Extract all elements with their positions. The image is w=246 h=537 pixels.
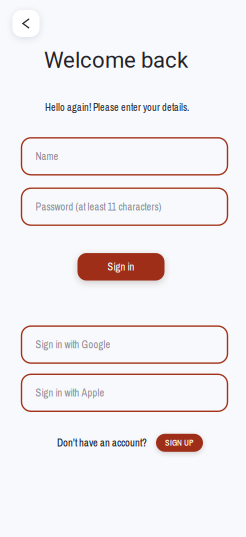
button[interactable]: Name xyxy=(21,138,227,175)
staticText: SIGN UP xyxy=(165,437,194,448)
staticText: Name xyxy=(35,149,58,163)
button[interactable]: Password (at least 11 characters) xyxy=(21,188,227,225)
staticText: Password (at least 11 characters) xyxy=(35,200,161,214)
staticText: Welcome back xyxy=(44,47,188,73)
staticText: Sign in with Apple xyxy=(35,386,104,400)
button[interactable]: Sign in with Apple xyxy=(21,374,227,411)
staticText: Sign in with Google xyxy=(35,338,110,351)
button[interactable]: SIGN UP xyxy=(156,434,203,452)
button[interactable]: Sign in xyxy=(77,253,164,281)
staticText: Sign in xyxy=(107,260,134,274)
staticText: Don't have an account? xyxy=(57,436,147,450)
button[interactable]: Sign in with Google xyxy=(21,326,227,363)
staticText: Hello again! Please enter your details. xyxy=(45,101,189,114)
button[interactable]: Back xyxy=(12,10,39,37)
